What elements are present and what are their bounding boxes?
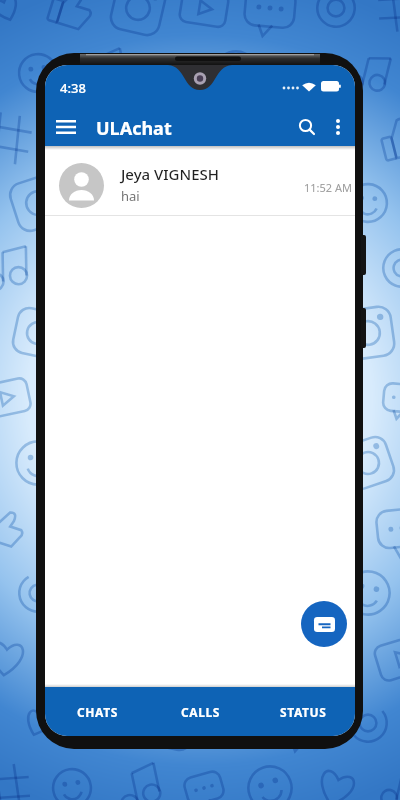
staticText: CALLS bbox=[181, 704, 221, 720]
button[interactable]: CHATS bbox=[45, 687, 149, 736]
button[interactable] bbox=[323, 107, 353, 146]
staticText: 11:52 AM bbox=[304, 180, 352, 195]
staticText: Jeya VIGNESH bbox=[121, 164, 219, 184]
button[interactable] bbox=[45, 107, 87, 146]
staticText: 4:38 bbox=[60, 79, 86, 97]
button[interactable] bbox=[301, 601, 347, 647]
button[interactable] bbox=[289, 107, 325, 146]
button[interactable]: CALLS bbox=[149, 687, 252, 736]
staticText: ULAchat bbox=[96, 116, 172, 141]
staticText: CHATS bbox=[77, 704, 118, 720]
button[interactable]: Jeya VIGNESH bbox=[45, 150, 355, 216]
staticText: hai bbox=[121, 187, 140, 205]
button[interactable]: STATUS bbox=[252, 687, 355, 736]
staticText: STATUS bbox=[280, 704, 327, 720]
